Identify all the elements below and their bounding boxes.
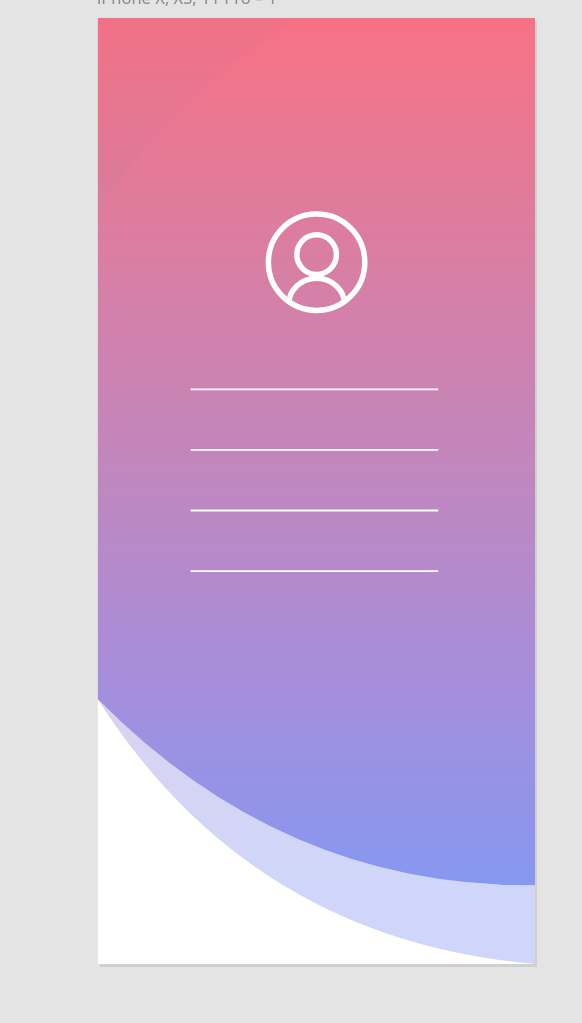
button[interactable]: Password field: [191, 485, 439, 515]
button[interactable]: Email field: [191, 424, 439, 454]
staticText: iPhone X, XS, 11 Pro – 1: [97, 0, 277, 8]
button[interactable]: Choose profile picture: [266, 211, 368, 313]
button[interactable]: Confirm password field: [191, 545, 439, 575]
button[interactable]: Name field: [191, 363, 439, 393]
